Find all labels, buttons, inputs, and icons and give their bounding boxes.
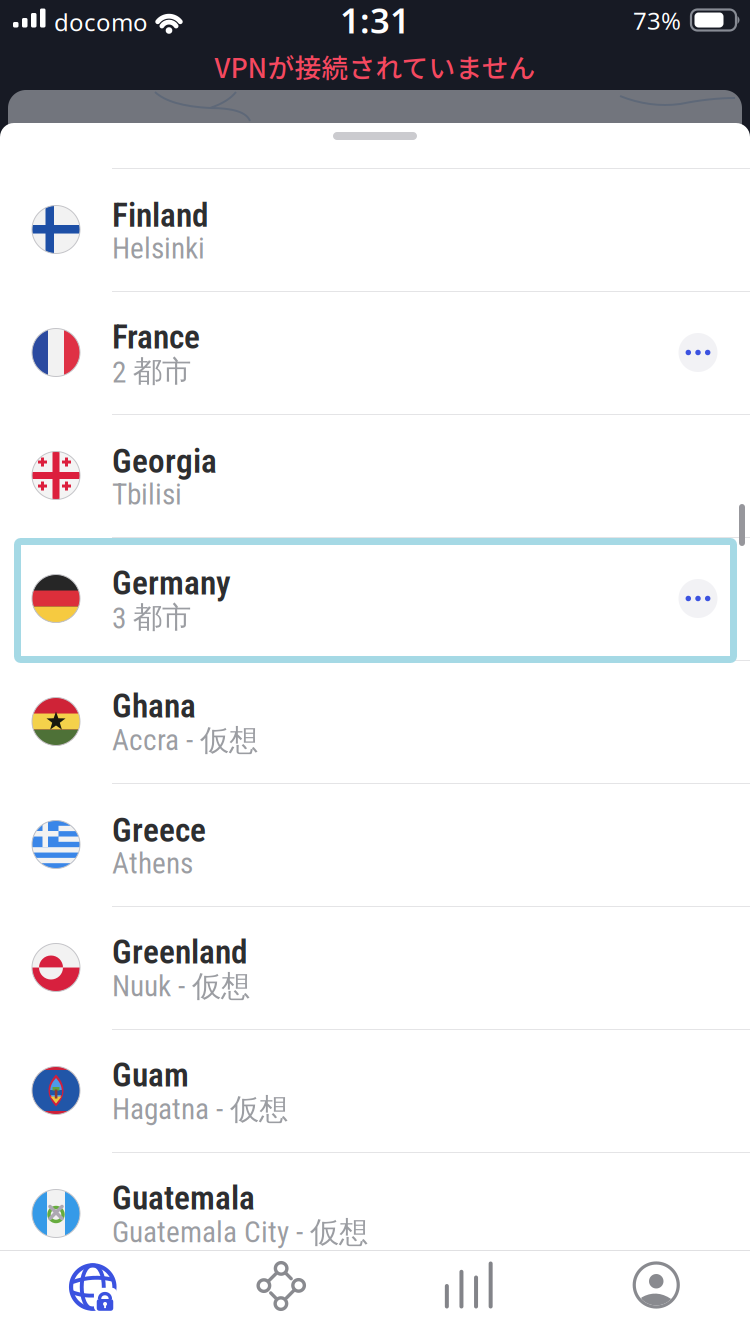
- staticText: Ghana: [112, 686, 196, 726]
- button[interactable]: Guam: [0, 1029, 750, 1152]
- button[interactable]: Germany: [0, 537, 750, 660]
- staticText: Georgia: [112, 442, 217, 481]
- button[interactable]: Guatemala: [0, 1152, 750, 1275]
- button[interactable]: Account: [562, 1250, 750, 1333]
- staticText: Greenland: [112, 932, 248, 972]
- button[interactable]: Locations: [0, 1250, 187, 1333]
- staticText: France: [112, 317, 200, 357]
- staticText: Hagatna - 仮想: [112, 1091, 288, 1128]
- staticText: Greece: [112, 811, 206, 850]
- staticText: Athens: [112, 846, 193, 881]
- staticText: 1:31: [340, 0, 410, 43]
- staticText: docomo: [54, 6, 148, 38]
- button[interactable]: Georgia: [0, 414, 750, 537]
- staticText: Accra - 仮想: [112, 722, 258, 759]
- button[interactable]: Statistics: [375, 1250, 562, 1333]
- button[interactable]: More options for Germany: [678, 579, 717, 618]
- button[interactable]: Finland: [0, 168, 750, 291]
- staticText: Helsinki: [112, 231, 205, 266]
- staticText: 2 都市: [112, 353, 191, 390]
- staticText: Tbilisi: [112, 477, 182, 512]
- staticText: Guatemala: [112, 1178, 255, 1218]
- button[interactable]: Connections: [187, 1250, 375, 1333]
- button[interactable]: Ghana: [0, 660, 750, 783]
- button[interactable]: Greenland: [0, 906, 750, 1029]
- staticText: VPNが接続されていません: [214, 47, 535, 86]
- staticText: Guatemala City - 仮想: [112, 1214, 368, 1251]
- staticText: 73%: [633, 4, 681, 36]
- staticText: Guam: [112, 1055, 189, 1095]
- button[interactable]: Greece: [0, 783, 750, 906]
- staticText: Germany: [112, 563, 231, 603]
- staticText: 3 都市: [112, 599, 191, 636]
- staticText: Nuuk - 仮想: [112, 968, 250, 1005]
- staticText: Finland: [112, 196, 209, 235]
- button[interactable]: More options for France: [678, 333, 717, 372]
- button[interactable]: France: [0, 291, 750, 414]
